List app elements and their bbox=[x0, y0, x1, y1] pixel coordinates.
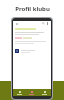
staticText: Profil klubu bbox=[15, 5, 50, 13]
button[interactable]: Back bbox=[15, 22, 18, 25]
button[interactable]: More options bbox=[46, 22, 49, 25]
button[interactable] bbox=[15, 49, 35, 53]
button[interactable]: Search bbox=[42, 22, 45, 25]
button[interactable]: Profil bbox=[25, 89, 38, 96]
button[interactable]: Viac bbox=[38, 89, 51, 96]
button[interactable]: Domov bbox=[13, 89, 25, 96]
